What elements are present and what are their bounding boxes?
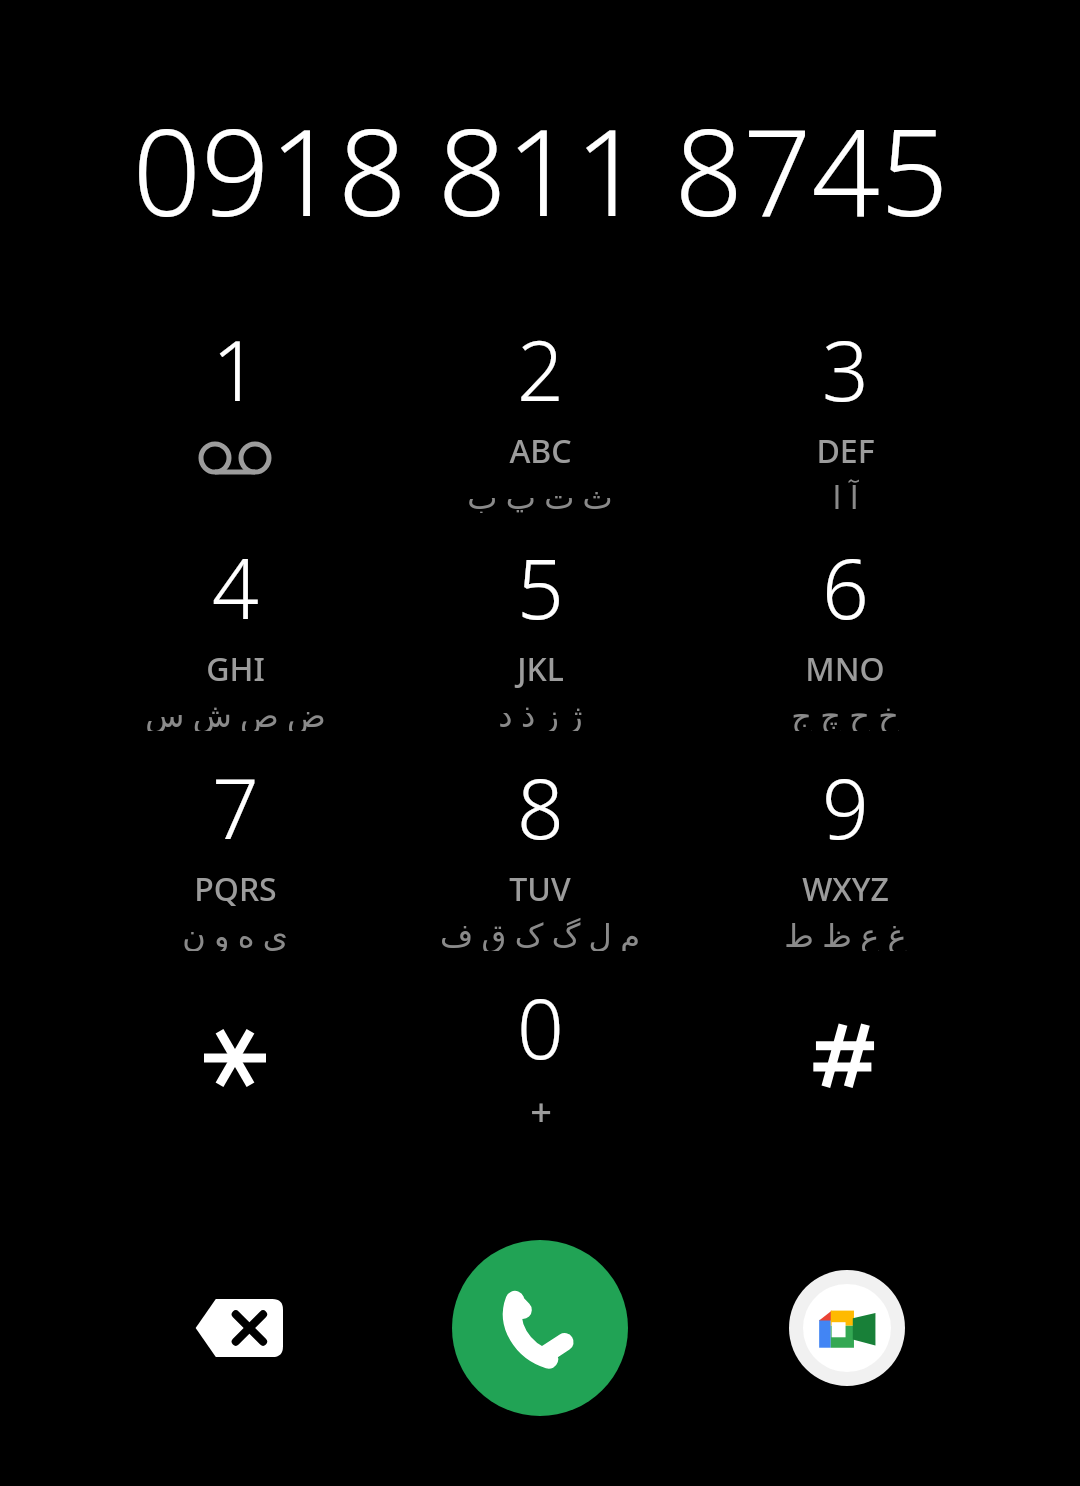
button[interactable]: 0 (410, 971, 670, 1171)
staticText: ABC (509, 429, 572, 473)
button[interactable]: 1 (105, 313, 365, 513)
button[interactable]: 0918 811 8745 (0, 88, 1080, 251)
staticText: غ ع ظ ط (784, 913, 907, 951)
staticText: TUV (509, 867, 571, 911)
staticText: 2 (517, 313, 564, 425)
button[interactable]: 9 (715, 751, 975, 951)
staticText: ض ص ش س (145, 693, 326, 731)
staticText: 3 (822, 313, 869, 425)
button[interactable]: 8 (410, 751, 670, 951)
button[interactable]: 7 (105, 751, 365, 951)
staticText: JKL (517, 647, 564, 691)
button[interactable]: Pound (735, 965, 955, 1145)
staticText: GHI (206, 647, 265, 691)
staticText: DEF (816, 429, 875, 473)
staticText: 6 (822, 531, 869, 643)
staticText: 0918 811 8745 (132, 88, 949, 251)
staticText: 4 (212, 531, 259, 643)
staticText: 5 (517, 531, 564, 643)
staticText: ث ت پ ب (467, 475, 613, 513)
staticText: 7 (212, 751, 259, 863)
staticText: م ل گ ک ق ف (440, 913, 640, 951)
button[interactable]: Call (452, 1240, 628, 1416)
staticText: ی ه و ن (182, 913, 288, 951)
button[interactable]: Backspace (145, 1248, 325, 1408)
staticText: PQRS (194, 867, 277, 911)
button[interactable]: 2 (410, 313, 670, 513)
button[interactable]: 4 (105, 531, 365, 731)
staticText: خ ح چ ج (791, 693, 899, 731)
staticText: + (530, 1085, 552, 1137)
staticText: WXYZ (802, 867, 889, 911)
staticText: 8 (517, 751, 564, 863)
staticText: MNO (805, 647, 885, 691)
button[interactable]: 3 (715, 313, 975, 513)
staticText: 0 (517, 971, 564, 1083)
button[interactable]: 5 (410, 531, 670, 731)
staticText: 9 (822, 751, 869, 863)
staticText: ژ ز ذ د (498, 693, 583, 731)
button[interactable]: Star (125, 968, 345, 1148)
staticText: 1 (212, 313, 259, 425)
button[interactable]: 6 (715, 531, 975, 731)
button[interactable]: Video call with Google Meet (789, 1270, 905, 1386)
staticText: آ ا (832, 475, 859, 513)
